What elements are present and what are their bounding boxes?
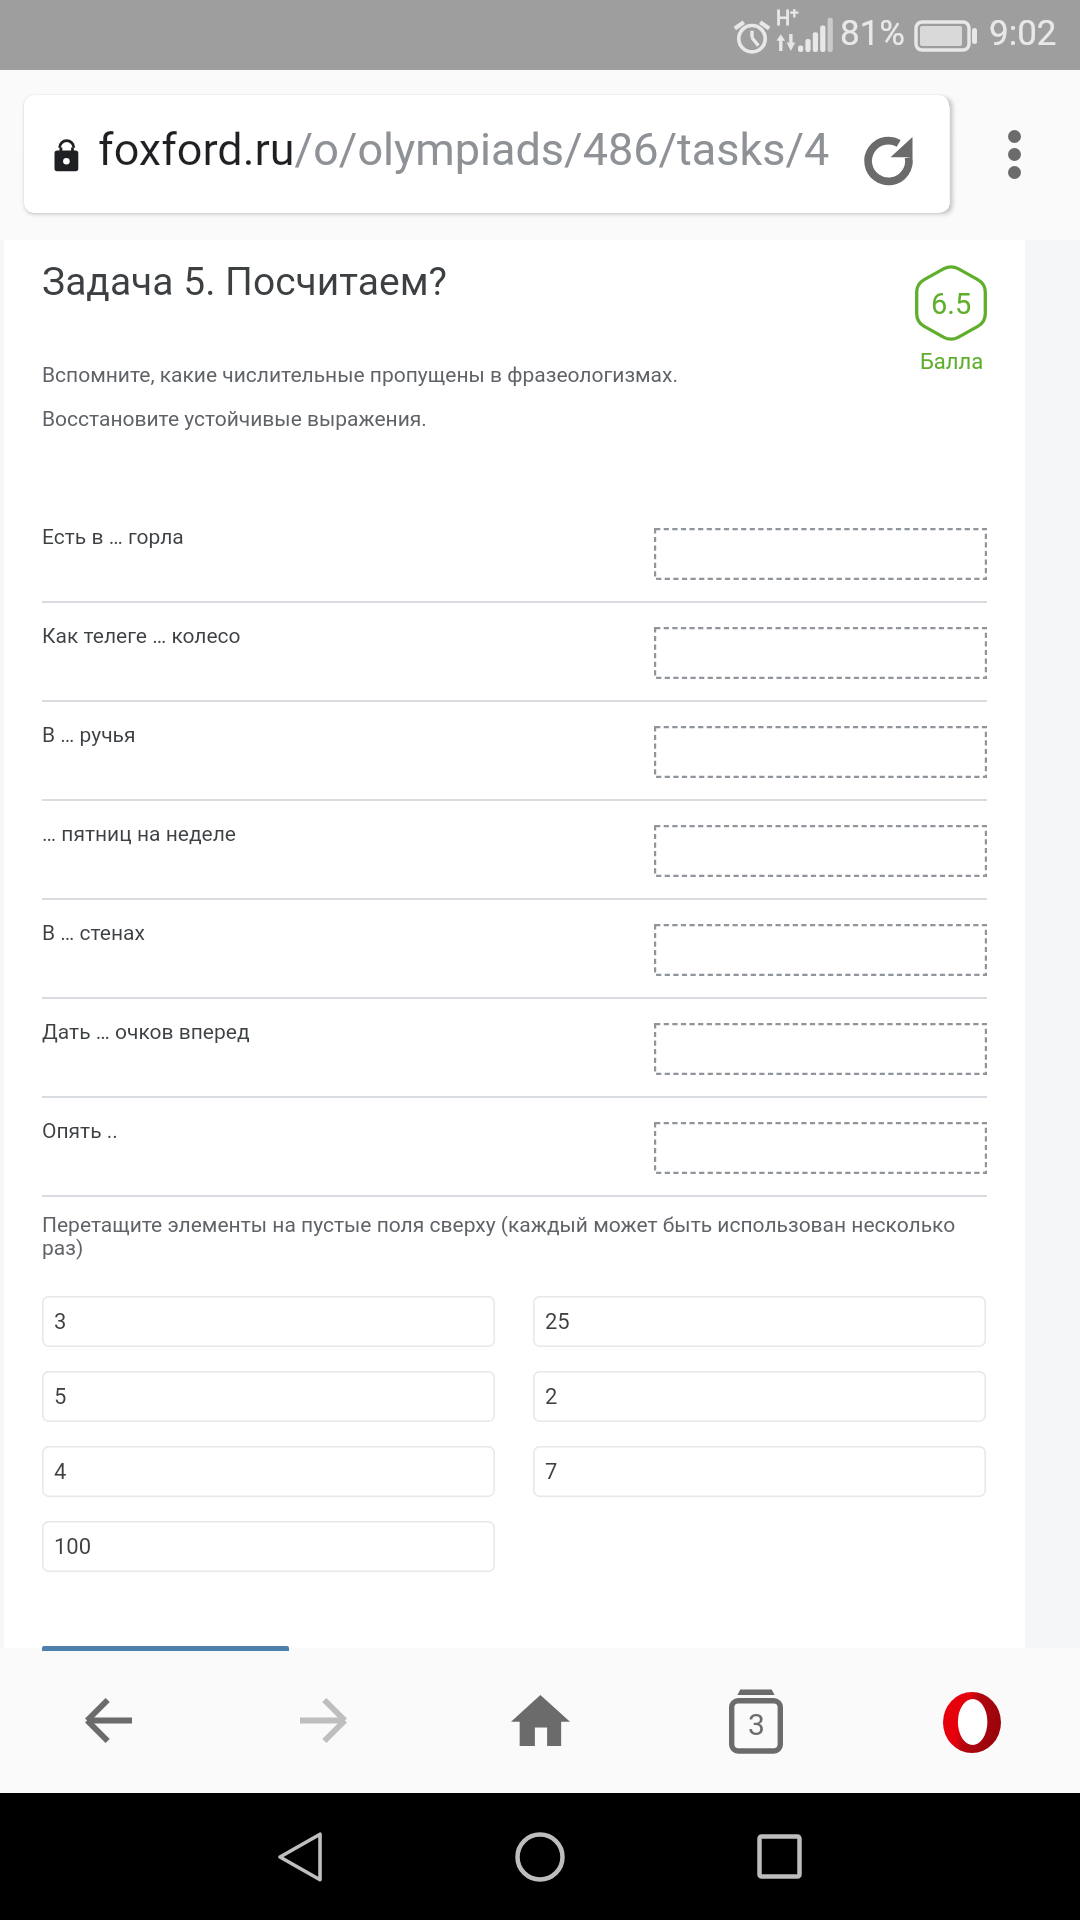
staticText: Задача 5. Посчитаем? <box>42 259 448 305</box>
button[interactable]: Как телеге … колесо <box>0 603 1080 702</box>
button[interactable]: 5 <box>42 1371 495 1422</box>
button[interactable]: 7 <box>533 1446 986 1497</box>
staticText: Перетащите элементы на пустые поля сверх… <box>42 1213 962 1260</box>
button[interactable]: More options <box>949 95 1080 213</box>
button[interactable]: foxford.ru/o/olympiads/486/tasks/4 <box>24 95 949 213</box>
button[interactable]: В … стенах <box>0 900 1080 999</box>
staticText: 81% <box>840 13 905 54</box>
button[interactable]: Recent apps <box>719 1793 839 1920</box>
button[interactable]: Home <box>480 1793 600 1920</box>
button[interactable]: 25 <box>533 1296 986 1347</box>
staticText: Восстановите устойчивые выражения. <box>42 407 427 432</box>
staticText: 3 <box>748 1707 765 1742</box>
staticText: В … стенах <box>42 921 145 946</box>
staticText: В … ручья <box>42 723 136 748</box>
button[interactable]: 3 <box>42 1296 495 1347</box>
staticText: foxford.ru/o/olympiads/486/tasks/4 <box>98 123 830 176</box>
button[interactable]: 4 <box>42 1446 495 1497</box>
staticText: Есть в … горла <box>42 525 184 550</box>
staticText: Опять .. <box>42 1119 118 1144</box>
staticText: … пятниц на неделе <box>42 822 236 847</box>
staticText: 6.5 <box>931 287 972 321</box>
button[interactable]: Опять .. <box>0 1098 1080 1197</box>
staticText: 5 <box>54 1384 67 1410</box>
button[interactable]: Reload page <box>843 95 949 213</box>
staticText: 100 <box>54 1534 92 1560</box>
button[interactable]: 100 <box>42 1521 495 1572</box>
staticText: 2 <box>545 1384 558 1410</box>
button[interactable]: Back <box>240 1793 360 1920</box>
staticText: Как телеге … колесо <box>42 624 241 649</box>
staticText: H <box>776 6 791 29</box>
button[interactable]: Tabs <box>648 1648 864 1793</box>
staticText: 3 <box>54 1309 67 1335</box>
button[interactable]: Forward <box>216 1648 432 1793</box>
button[interactable]: Opera menu <box>864 1648 1080 1793</box>
button[interactable]: Back <box>0 1648 216 1793</box>
button[interactable]: Дать … очков вперед <box>0 999 1080 1098</box>
button[interactable]: … пятниц на неделе <box>0 801 1080 900</box>
staticText: Балла <box>920 349 984 375</box>
staticText: 9:02 <box>989 13 1057 54</box>
button[interactable]: Home <box>432 1648 648 1793</box>
button[interactable]: Есть в … горла <box>0 504 1080 603</box>
button[interactable]: 2 <box>533 1371 986 1422</box>
staticText: 4 <box>54 1459 67 1485</box>
staticText: 25 <box>545 1309 570 1335</box>
staticText: + <box>790 4 799 22</box>
button[interactable]: В … ручья <box>0 702 1080 801</box>
staticText: Дать … очков вперед <box>42 1020 250 1045</box>
staticText: 7 <box>545 1459 558 1485</box>
staticText: Вспомните, какие числительные пропущены … <box>42 363 678 388</box>
